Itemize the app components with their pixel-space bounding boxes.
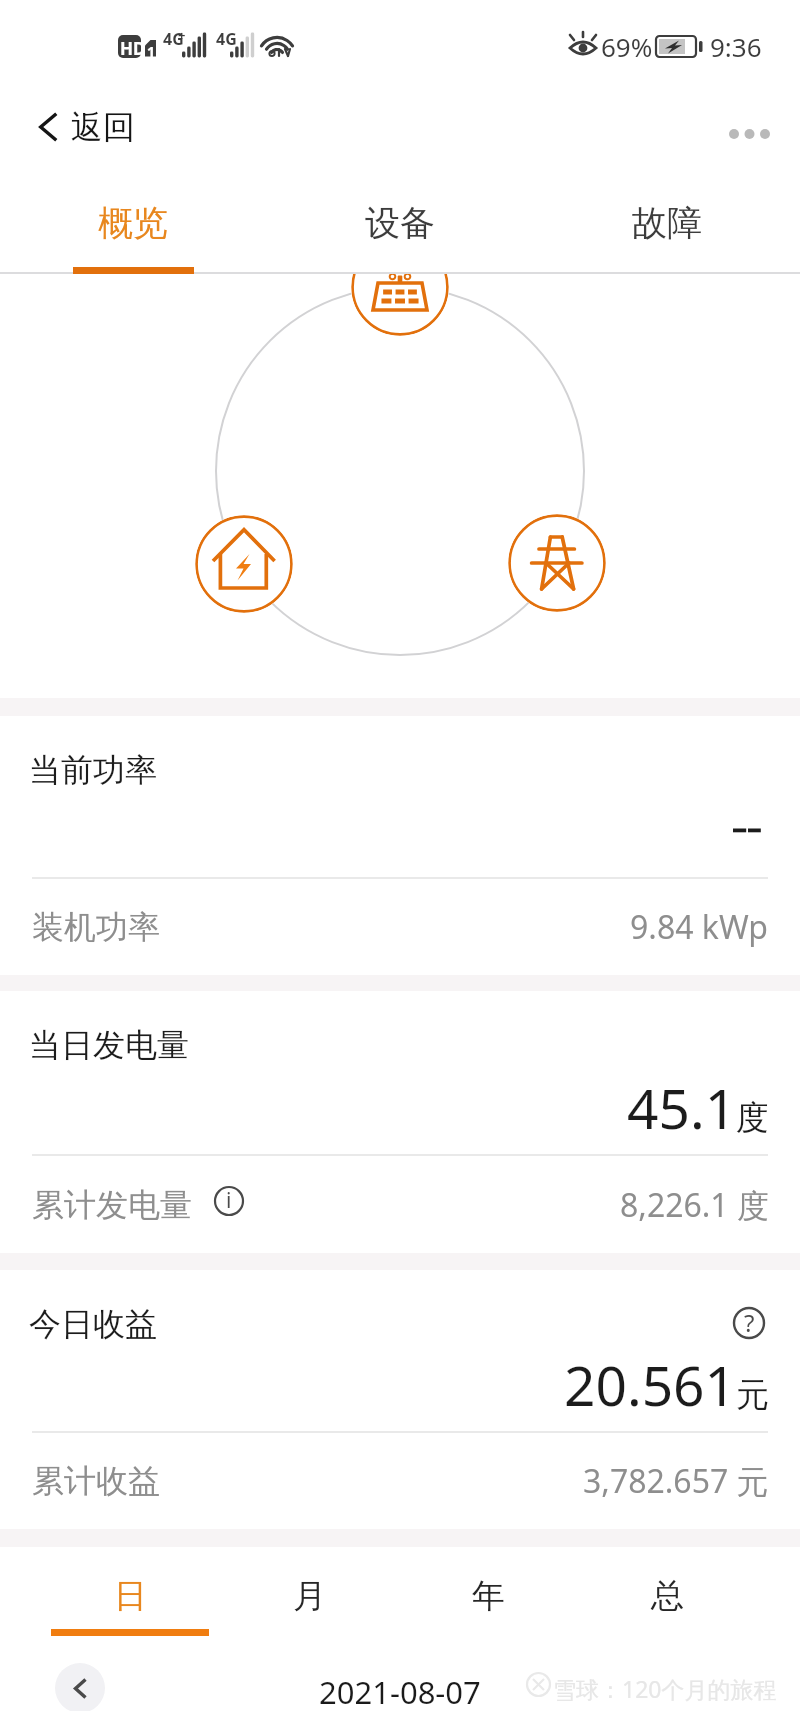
staticText: 45.1 xyxy=(627,1070,737,1145)
button[interactable]: Solar panel xyxy=(351,274,449,336)
button[interactable]: 故障 xyxy=(533,180,800,274)
staticText: 装机功率 xyxy=(32,907,160,947)
button[interactable]: Previous day xyxy=(55,1663,105,1711)
staticText: 69% xyxy=(601,29,653,64)
staticText: 4G xyxy=(163,28,184,50)
staticText: 设备 xyxy=(365,201,435,245)
button[interactable]: Help xyxy=(717,1291,781,1355)
staticText: 日 xyxy=(114,1575,147,1617)
staticText: 度 xyxy=(736,1097,769,1139)
button[interactable]: Info xyxy=(205,1177,253,1225)
staticText: 当日发电量 xyxy=(29,1025,189,1065)
staticText: 9:36 xyxy=(710,29,762,64)
staticText: 概览 xyxy=(98,201,168,245)
button[interactable]: 返回 xyxy=(0,89,161,165)
button[interactable]: 年 xyxy=(399,1547,578,1648)
staticText: 月 xyxy=(293,1575,326,1617)
button[interactable]: 概览 xyxy=(0,180,266,274)
button[interactable]: Power grid xyxy=(508,514,606,612)
staticText: HD xyxy=(120,37,146,60)
staticText: 8,226.1 度 xyxy=(620,1183,769,1227)
button[interactable]: 日 xyxy=(40,1547,220,1648)
staticText: 4G xyxy=(216,28,237,50)
staticText: 总 xyxy=(651,1575,684,1617)
staticText: 9.84 kWp xyxy=(630,905,769,949)
staticText: 今日收益 xyxy=(29,1304,157,1344)
button[interactable]: 总 xyxy=(578,1547,757,1648)
staticText: + xyxy=(178,26,186,44)
staticText: 20.561 xyxy=(564,1347,737,1422)
staticText: 累计收益 xyxy=(32,1461,160,1501)
staticText: ? xyxy=(744,1306,755,1339)
button[interactable]: 设备 xyxy=(266,180,533,274)
staticText: 3,782.657 元 xyxy=(583,1459,769,1503)
staticText: 年 xyxy=(472,1575,505,1617)
button[interactable]: 月 xyxy=(220,1547,399,1648)
staticText: 返回 xyxy=(71,107,135,147)
staticText: 累计发电量 xyxy=(32,1185,192,1225)
staticText: 雪球：120个月的旅程 xyxy=(553,1673,777,1704)
staticText: i xyxy=(226,1186,232,1215)
staticText: 2021-08-07 xyxy=(319,1671,481,1711)
button[interactable]: Home consumption xyxy=(195,515,293,613)
staticText: 1 xyxy=(147,42,156,61)
staticText: 元 xyxy=(736,1374,769,1416)
button[interactable]: More options xyxy=(705,102,793,166)
staticText: 故障 xyxy=(632,201,702,245)
staticText: 当前功率 xyxy=(29,750,157,790)
